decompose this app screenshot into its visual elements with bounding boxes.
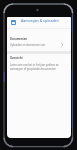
staticText: aanvragen of geuploade documenten bbox=[10, 67, 56, 71]
staticText: Overzicht bbox=[10, 56, 23, 60]
staticText: Documenten bbox=[10, 37, 27, 41]
staticText: Aanvragen & uploaden bbox=[21, 18, 59, 23]
button[interactable]: Aanvragen & uploaden bbox=[10, 19, 68, 26]
staticText: Laten zien van het in het jaar gedane aa bbox=[10, 63, 59, 67]
button[interactable]: Uploaden en doorsturen van bbox=[7, 42, 71, 48]
button[interactable]: Laten zien van het in het jaar gedane aa bbox=[7, 62, 71, 71]
staticText: Uploaden en doorsturen van bbox=[10, 43, 45, 47]
